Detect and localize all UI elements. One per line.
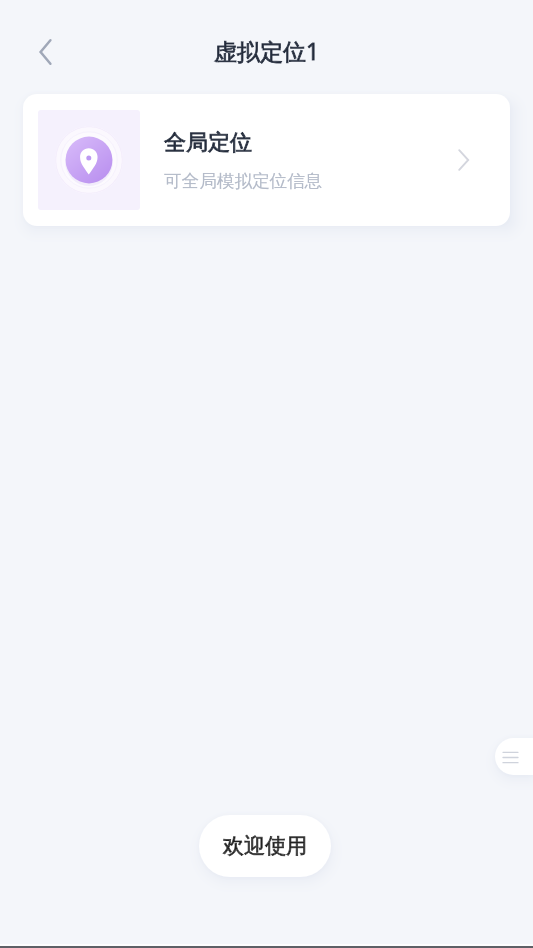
- staticText: 虚拟定位1: [214, 35, 320, 66]
- staticText: 全局定位: [164, 129, 252, 157]
- button[interactable]: 欢迎使用: [199, 815, 331, 877]
- staticText: 虚拟定位1: [214, 35, 320, 66]
- button[interactable]: 全局定位: [23, 94, 510, 226]
- button[interactable]: Back: [24, 30, 68, 74]
- staticText: 全局定位: [164, 129, 252, 157]
- staticText: 欢迎使用: [223, 833, 307, 859]
- staticText: 可全局模拟定位信息: [164, 170, 323, 192]
- button[interactable]: Menu: [495, 738, 533, 775]
- staticText: 欢迎使用: [223, 833, 307, 859]
